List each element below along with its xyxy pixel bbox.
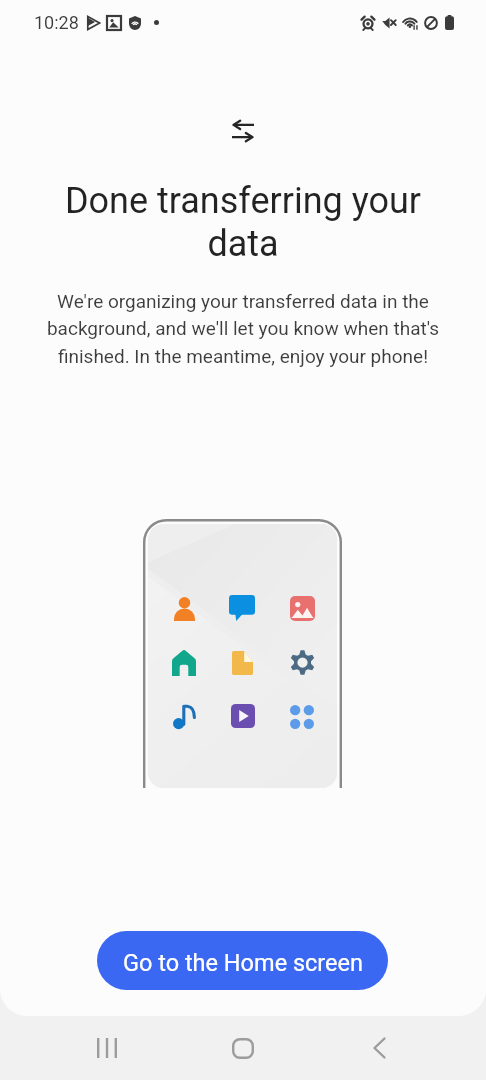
staticText: We're organizing your transferred data i… [28,290,458,367]
staticText: Done transferring your data [44,180,442,265]
button[interactable]: Back [359,1028,399,1068]
staticText: Go to the Home screen [123,949,363,977]
button[interactable]: Recent apps [87,1028,127,1068]
staticText: 10:28 [34,12,79,33]
button[interactable]: Go to the Home screen [97,931,388,990]
button[interactable]: Home [223,1028,263,1068]
